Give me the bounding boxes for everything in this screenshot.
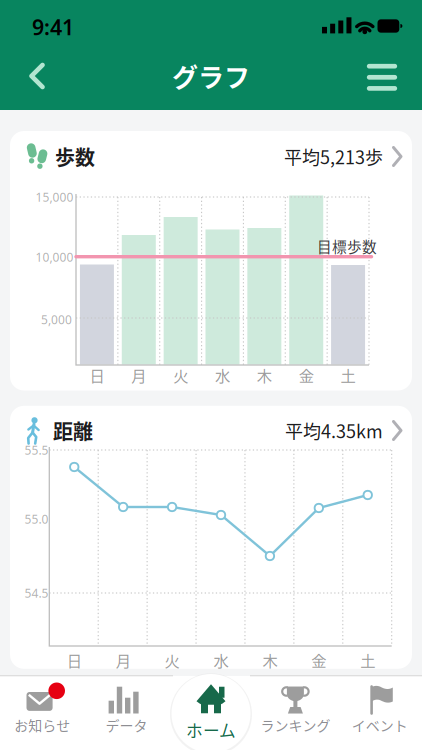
staticText: 木 (257, 364, 272, 386)
staticText: 火 (165, 649, 180, 671)
button[interactable]: ホーム (170, 673, 252, 750)
staticText: イベント (352, 715, 408, 735)
button[interactable]: お知らせ (0, 676, 84, 742)
staticText: 目標歩数 (317, 235, 377, 257)
button[interactable]: 歩数 (27, 136, 403, 176)
staticText: データ (106, 715, 148, 735)
staticText: 平均4.35km (285, 417, 383, 444)
staticText: ランキング (260, 715, 330, 735)
staticText: 月 (116, 649, 131, 671)
staticText: 歩数 (55, 142, 95, 171)
button[interactable] (30, 63, 56, 93)
staticText: 火 (173, 364, 188, 386)
staticText: 水 (213, 649, 228, 671)
staticText: 月 (131, 364, 146, 386)
staticText: 土 (360, 649, 375, 671)
staticText: 木 (262, 649, 277, 671)
staticText: 水 (215, 364, 230, 386)
staticText: お知らせ (14, 715, 70, 735)
staticText: 金 (311, 649, 326, 671)
staticText: 距離 (53, 416, 93, 445)
button[interactable]: ランキング (253, 676, 337, 742)
staticText: 金 (299, 364, 314, 386)
staticText: 55.5 (24, 442, 48, 458)
button[interactable]: データ (85, 676, 169, 742)
staticText: 日 (67, 649, 82, 671)
staticText: グラフ (172, 57, 250, 95)
staticText: 15,000 (35, 189, 73, 205)
staticText: 土 (341, 364, 356, 386)
staticText: 平均5,213歩 (284, 143, 383, 170)
button[interactable]: イベント (338, 676, 422, 742)
staticText: 54.5 (24, 585, 48, 601)
staticText: 10,000 (35, 249, 73, 265)
staticText: 9:41 (32, 13, 74, 41)
staticText: 日 (89, 364, 104, 386)
staticText: ホーム (186, 718, 236, 742)
button[interactable] (367, 64, 397, 91)
staticText: 5,000 (41, 311, 72, 327)
button[interactable]: 距離 (27, 410, 403, 450)
staticText: 55.0 (24, 511, 48, 527)
